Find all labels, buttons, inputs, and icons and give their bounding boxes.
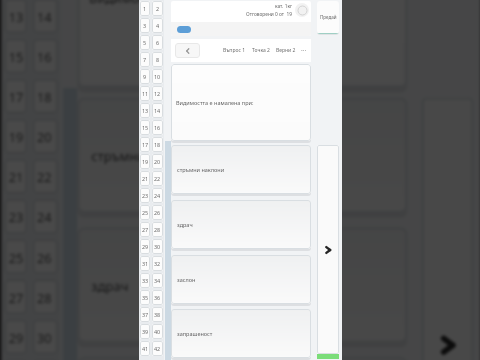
button[interactable]: 23 [4, 199, 28, 234]
button[interactable]: 7 [140, 52, 150, 67]
button[interactable]: 13 [4, 0, 28, 34]
button[interactable]: 5 [140, 35, 150, 50]
staticText: стръмни наклони [177, 166, 225, 173]
button[interactable]: заслон [171, 255, 311, 304]
staticText: 13 [142, 107, 149, 114]
button[interactable]: здрач [171, 200, 311, 249]
button[interactable]: 34 [152, 273, 163, 288]
button[interactable]: 37 [140, 307, 150, 322]
button[interactable]: 36 [152, 290, 163, 305]
button[interactable]: стръмни наклони [171, 145, 311, 194]
button[interactable]: 11 [140, 86, 150, 101]
button[interactable]: 18 [32, 78, 58, 114]
staticText: здрач [177, 221, 193, 228]
button[interactable]: 21 [140, 171, 150, 186]
button[interactable]: 1 [140, 1, 150, 16]
staticText: заслон [177, 276, 196, 283]
button[interactable]: 2 [152, 1, 163, 16]
button[interactable]: 41 [140, 341, 150, 356]
button[interactable]: 21 [4, 159, 28, 194]
staticText: 38 [154, 311, 161, 318]
button[interactable]: 33 [140, 273, 150, 288]
button[interactable]: 22 [152, 171, 163, 186]
button[interactable]: 10 [152, 69, 163, 84]
staticText: Видимостта е намалена при: [176, 99, 254, 106]
button[interactable]: Точка 2 [252, 43, 270, 58]
button[interactable]: 17 [4, 78, 28, 114]
button[interactable]: 27 [140, 222, 150, 237]
button[interactable]: 29 [4, 319, 28, 355]
button[interactable]: 25 [4, 239, 28, 274]
button[interactable]: 23 [140, 188, 150, 203]
button[interactable]: 4 [152, 18, 163, 33]
button[interactable]: More options [301, 43, 307, 58]
button[interactable]: 13 [140, 103, 150, 118]
staticText: 35 [142, 294, 149, 301]
button[interactable]: 3 [140, 18, 150, 33]
button[interactable]: 27 [4, 279, 28, 314]
button[interactable]: 28 [152, 222, 163, 237]
button[interactable]: 16 [152, 120, 163, 135]
button[interactable]: запрашеност [171, 309, 311, 358]
staticText: 6 [156, 39, 160, 46]
button[interactable]: Timer [295, 3, 309, 17]
button[interactable]: 19 [4, 119, 28, 154]
button[interactable]: 25 [140, 205, 150, 220]
button[interactable]: 20 [152, 154, 163, 169]
button[interactable]: 42 [152, 341, 163, 356]
button[interactable]: 22 [32, 159, 58, 194]
button[interactable]: Видимостта е намалена при: [171, 64, 311, 141]
button[interactable]: Предай [317, 1, 339, 34]
button[interactable]: 15 [140, 120, 150, 135]
button[interactable]: 12 [152, 86, 163, 101]
button[interactable]: 24 [152, 188, 163, 203]
staticText: 30 [154, 243, 161, 250]
staticText: 33 [142, 277, 149, 284]
button[interactable]: 26 [32, 239, 58, 274]
button[interactable]: 30 [152, 239, 163, 254]
button[interactable]: здрач [77, 227, 408, 343]
button[interactable]: 9 [140, 69, 150, 84]
button[interactable]: 14 [152, 103, 163, 118]
staticText: 23 [142, 192, 149, 199]
button[interactable]: Верни 2 [276, 43, 296, 58]
staticText: 12 [154, 90, 161, 97]
button[interactable]: 18 [152, 137, 163, 152]
staticText: 25 [9, 248, 25, 265]
staticText: 39 [142, 328, 149, 335]
button[interactable]: 38 [152, 307, 163, 322]
button[interactable]: 31 [140, 256, 150, 271]
button[interactable]: 6 [152, 35, 163, 50]
button[interactable]: Видимостта е намалена при: [77, 0, 408, 88]
button[interactable]: 19 [140, 154, 150, 169]
button[interactable]: 40 [152, 324, 163, 339]
button[interactable]: 15 [4, 38, 28, 74]
button[interactable]: Next question [317, 145, 339, 354]
button[interactable]: 29 [140, 239, 150, 254]
button[interactable]: 14 [32, 0, 58, 34]
button[interactable]: заслон [77, 357, 408, 360]
button[interactable]: стръмни наклони [77, 97, 408, 213]
button[interactable]: 32 [152, 256, 163, 271]
button[interactable]: 24 [32, 199, 58, 234]
staticText: 18 [37, 88, 53, 104]
staticText: 8 [156, 56, 160, 63]
button[interactable]: Back [175, 43, 200, 58]
button[interactable]: 30 [32, 319, 58, 355]
staticText: 18 [154, 141, 161, 148]
button[interactable]: Въпрос 1 [223, 43, 246, 58]
button[interactable]: 28 [32, 279, 58, 314]
staticText: 11 [142, 90, 149, 97]
button[interactable]: 17 [140, 137, 150, 152]
button[interactable]: 26 [152, 205, 163, 220]
button[interactable]: 16 [32, 38, 58, 74]
button[interactable]: Next question [422, 97, 474, 360]
button[interactable]: 39 [140, 324, 150, 339]
button[interactable]: 8 [152, 52, 163, 67]
button[interactable]: 35 [140, 290, 150, 305]
staticText: 40 [154, 328, 161, 335]
button[interactable]: 20 [32, 119, 58, 154]
staticText: 34 [154, 277, 161, 284]
